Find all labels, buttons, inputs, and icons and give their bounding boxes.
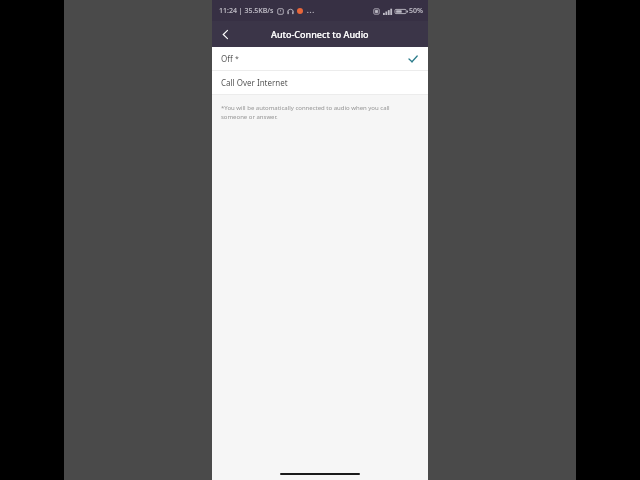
staticText: 50%: [409, 6, 423, 16]
button[interactable]: Back: [212, 21, 238, 47]
staticText: Auto-Connect to Audio: [271, 28, 369, 40]
staticText: Off: [221, 53, 233, 64]
staticText: Call Over Internet: [221, 77, 288, 88]
staticText: *: [235, 54, 239, 64]
staticText: *You will be automatically connected to …: [221, 104, 410, 121]
button[interactable]: Call Over Internet: [212, 71, 428, 94]
staticText: 11:24 | 35.5KB/s: [219, 6, 274, 16]
button[interactable]: Off: [212, 47, 428, 70]
